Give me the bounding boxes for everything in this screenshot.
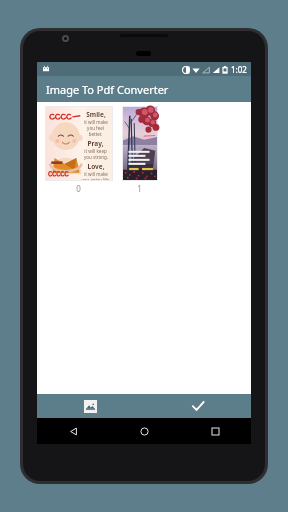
button[interactable]: Recent apps: [180, 418, 251, 444]
button[interactable]: Smile,: [40, 106, 117, 194]
staticText: 1:02: [231, 64, 247, 75]
staticText: 1: [137, 183, 142, 194]
button[interactable]: Confirm and create PDF: [144, 394, 251, 418]
staticText: you feel better.: [80, 125, 111, 137]
staticText: Pray,: [87, 139, 104, 148]
staticText: it will make: [84, 171, 108, 177]
staticText: 0: [76, 183, 81, 194]
button[interactable]: 1: [117, 106, 162, 194]
staticText: Image To Pdf Converter: [46, 82, 169, 97]
button[interactable]: Back: [37, 418, 109, 444]
staticText: you strong.: [84, 154, 108, 160]
staticText: you enjoy life.: [81, 177, 111, 180]
button[interactable]: Pick image from gallery: [37, 394, 144, 418]
staticText: it will keep: [84, 148, 107, 154]
staticText: Love,: [87, 162, 105, 171]
staticText: it will make: [84, 119, 108, 125]
button[interactable]: Home: [109, 418, 180, 444]
staticText: Smile,: [86, 110, 106, 119]
